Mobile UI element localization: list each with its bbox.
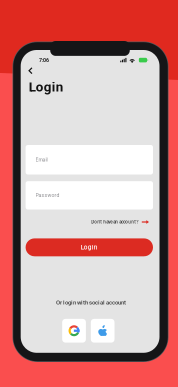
- staticText: Password: [36, 192, 60, 198]
- staticText: Email: [36, 157, 48, 163]
- staticText: Login: [29, 79, 63, 95]
- staticText: Login: [81, 244, 98, 251]
- staticText: Or login with social account: [56, 299, 126, 306]
- button[interactable]: Login: [21, 50, 148, 68]
- button[interactable]: Password: [26, 181, 153, 209]
- button[interactable]: Continue with Google: [62, 319, 86, 343]
- button[interactable]: Continue with Apple: [91, 319, 114, 343]
- button[interactable]: Email: [26, 145, 153, 174]
- button[interactable]: Back: [21, 50, 34, 63]
- button[interactable]: Don't have an account?: [21, 50, 83, 59]
- staticText: Don't have an account?: [91, 219, 138, 225]
- staticText: 7:06: [39, 57, 49, 63]
